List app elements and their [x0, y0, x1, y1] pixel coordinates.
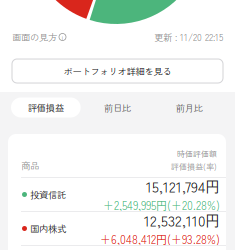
staticText: 評価損益(率) — [171, 160, 217, 172]
staticText: +2,549,995円(+20.28%) — [103, 197, 220, 213]
button[interactable]: 投資信託 — [8, 178, 226, 211]
staticText: 15,121,794円 — [146, 176, 220, 197]
staticText: 時価評価額 — [177, 148, 217, 159]
staticText: +6,048,412円(+93.28%) — [100, 231, 220, 247]
button[interactable]: 評価損益 — [11, 97, 81, 117]
button[interactable]: 前月比 — [154, 97, 224, 117]
staticText: 12,532,110円 — [144, 210, 220, 231]
staticText: 画面の見方 — [12, 30, 57, 44]
button[interactable]: 前日比 — [83, 97, 152, 117]
staticText: 投資信託 — [30, 188, 66, 201]
button[interactable]: ポートフォリオ詳細を見る — [12, 59, 223, 83]
staticText: 評価損益 — [28, 101, 64, 114]
staticText: 更新 : 11/20 22:15 — [154, 30, 223, 44]
staticText: 商品 — [21, 158, 39, 172]
button[interactable]: 画面の見方 — [12, 28, 66, 46]
staticText: 国内株式 — [30, 222, 66, 235]
staticText: ポートフォリオ詳細を見る — [63, 64, 171, 78]
staticText: 前月比 — [176, 101, 203, 114]
staticText: i — [61, 32, 63, 42]
button[interactable]: 国内株式 — [8, 212, 226, 245]
staticText: 前日比 — [104, 101, 131, 114]
